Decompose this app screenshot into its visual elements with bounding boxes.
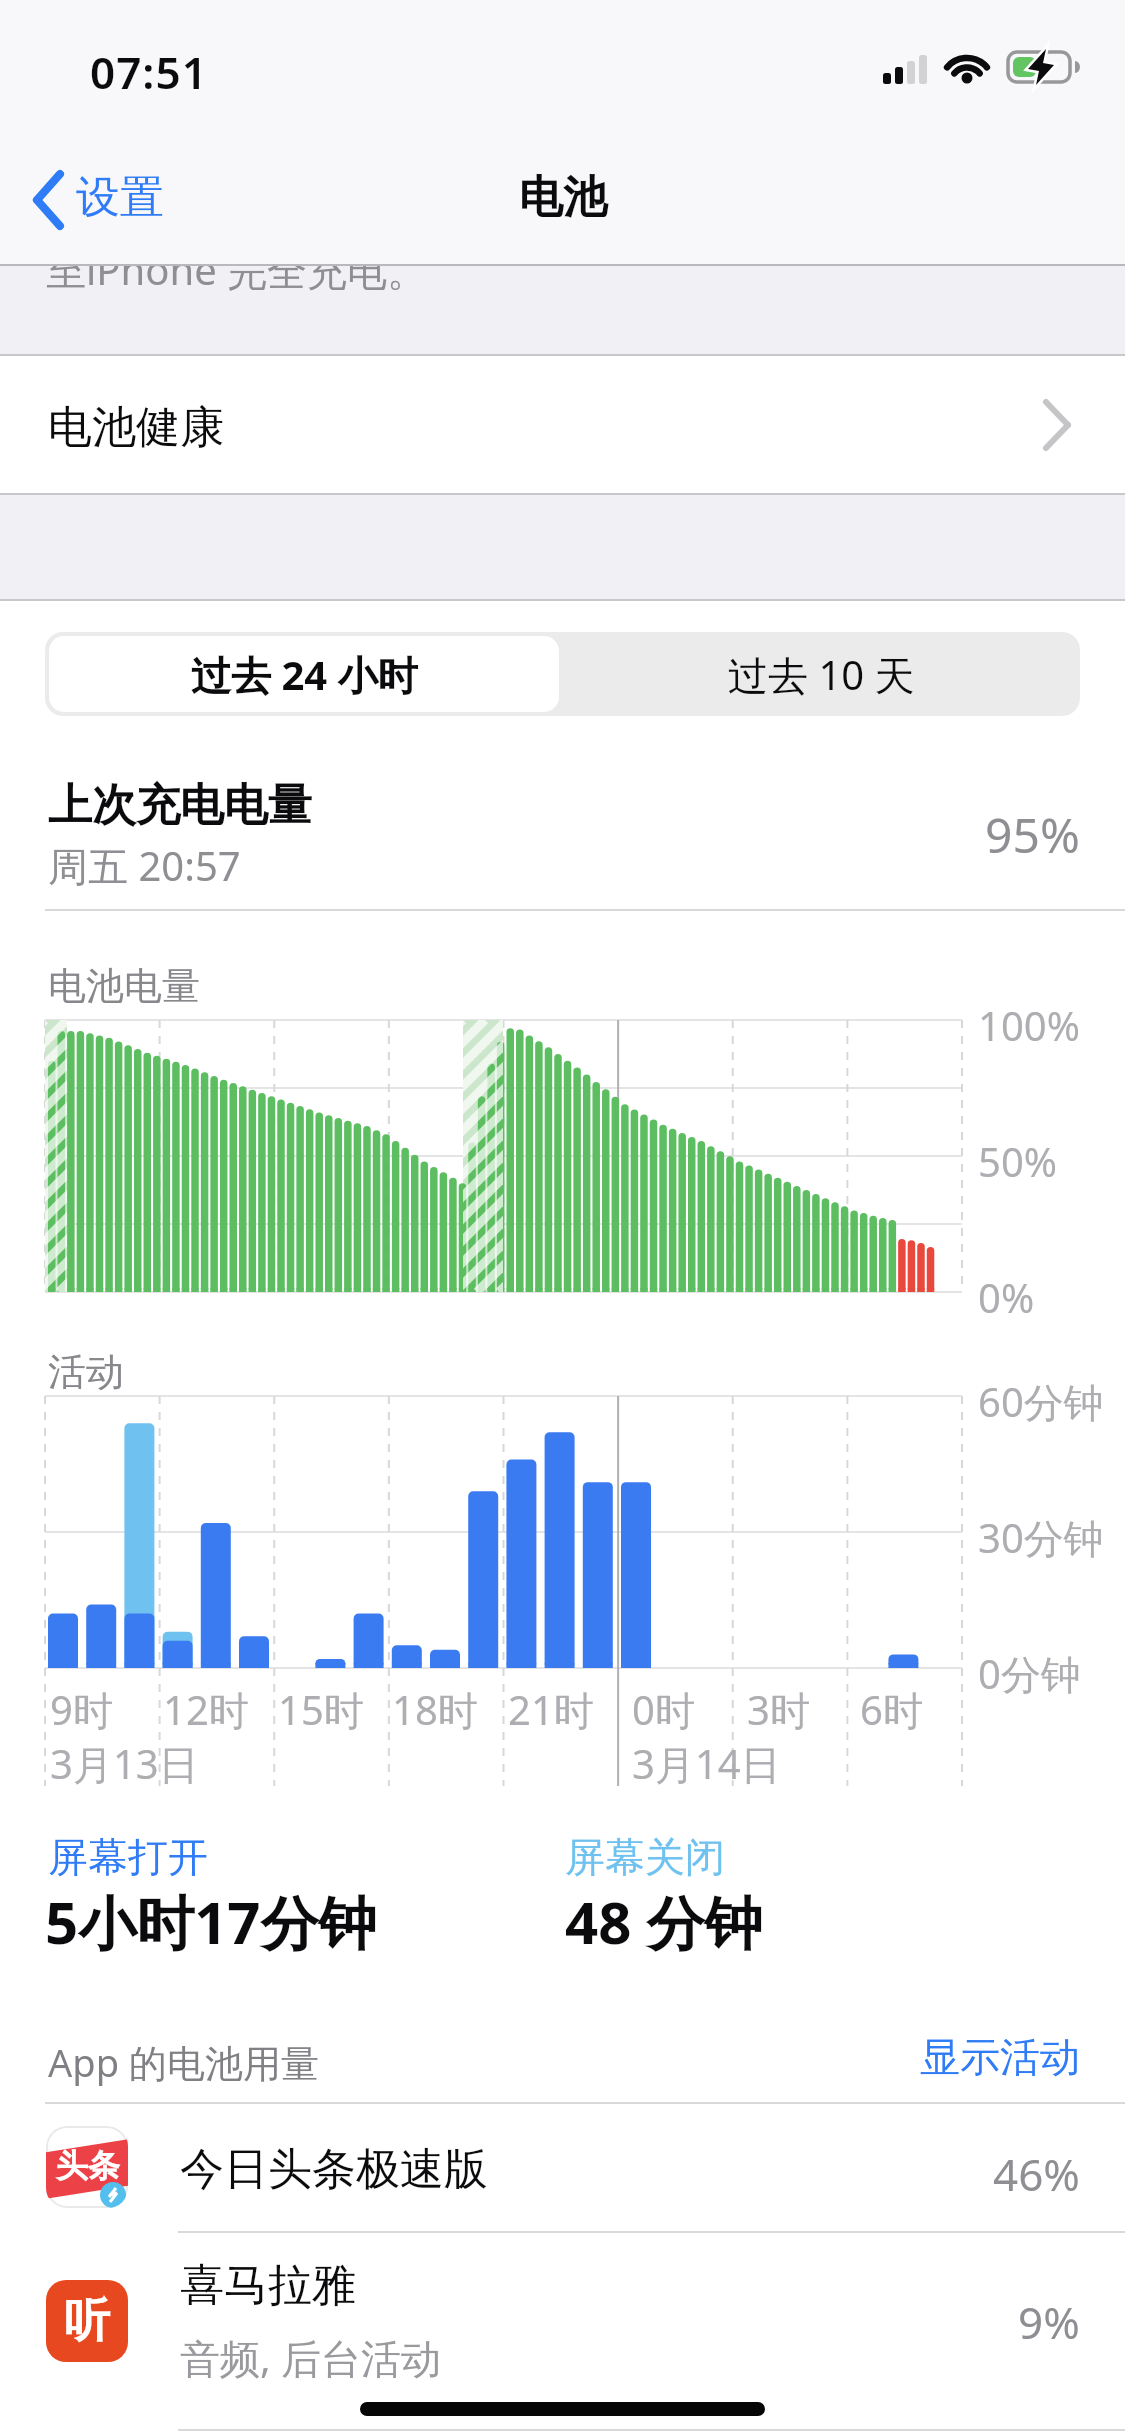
staticText: 48 分钟 xyxy=(565,1882,763,1961)
staticText: 今日头条极速版 xyxy=(180,2142,488,2197)
staticText: App 的电池用量 xyxy=(48,2036,319,2088)
staticText: 活动 xyxy=(48,1348,124,1396)
staticText: 30分钟 xyxy=(978,1510,1104,1565)
staticText: 听 xyxy=(64,2292,110,2350)
staticText: 电池电量 xyxy=(48,962,200,1010)
staticText: 3月13日 xyxy=(50,1736,199,1791)
staticText: 头条 xyxy=(56,2146,120,2186)
staticText: 3时 xyxy=(747,1682,810,1737)
staticText: 过去 10 天 xyxy=(728,647,915,702)
staticText: 电池健康 xyxy=(48,400,224,455)
button[interactable]: 过去 24 小时 xyxy=(49,636,559,712)
staticText: 6时 xyxy=(860,1682,923,1737)
staticText: 9时 xyxy=(50,1682,113,1737)
staticText: 95% xyxy=(985,802,1080,867)
staticText: 60分钟 xyxy=(978,1374,1104,1429)
staticText: 0时 xyxy=(632,1682,695,1737)
staticText: 9% xyxy=(1018,2292,1080,2352)
staticText: 设置 xyxy=(76,170,164,225)
staticText: 100% xyxy=(978,998,1080,1052)
staticText: 至iPhone 完全充电。 xyxy=(46,266,428,297)
staticText: 音频, 后台活动 xyxy=(180,2330,442,2385)
staticText: 5小时17分钟 xyxy=(45,1882,377,1961)
button[interactable]: 听 xyxy=(0,2240,1125,2400)
staticText: 0分钟 xyxy=(978,1646,1081,1701)
staticText: 上次充电电量 xyxy=(48,778,312,833)
button[interactable]: 过去 10 天 xyxy=(563,632,1080,716)
staticText: 过去 24 小时 xyxy=(191,647,418,702)
staticText: 3月14日 xyxy=(632,1736,781,1791)
staticText: 显示活动 xyxy=(920,2032,1080,2082)
button[interactable]: 显示活动 xyxy=(0,2032,1080,2082)
staticText: 50% xyxy=(978,1134,1057,1188)
staticText: 0% xyxy=(978,1270,1035,1324)
staticText: 12时 xyxy=(163,1682,249,1737)
button[interactable]: 设置 xyxy=(30,160,200,240)
staticText: 18时 xyxy=(392,1682,478,1737)
button[interactable]: 电池健康 xyxy=(0,356,1125,494)
staticText: 电池 xyxy=(519,170,607,225)
staticText: 46% xyxy=(993,2144,1080,2204)
staticText: 屏幕关闭 xyxy=(565,1832,725,1882)
staticText: 周五 20:57 xyxy=(48,838,241,893)
staticText: 07:51 xyxy=(90,42,208,102)
staticText: 屏幕打开 xyxy=(48,1832,208,1882)
staticText: 21时 xyxy=(508,1682,594,1737)
staticText: 喜马拉雅 xyxy=(180,2258,356,2313)
button[interactable]: 头条 xyxy=(0,2104,1125,2232)
staticText: 15时 xyxy=(278,1682,364,1737)
